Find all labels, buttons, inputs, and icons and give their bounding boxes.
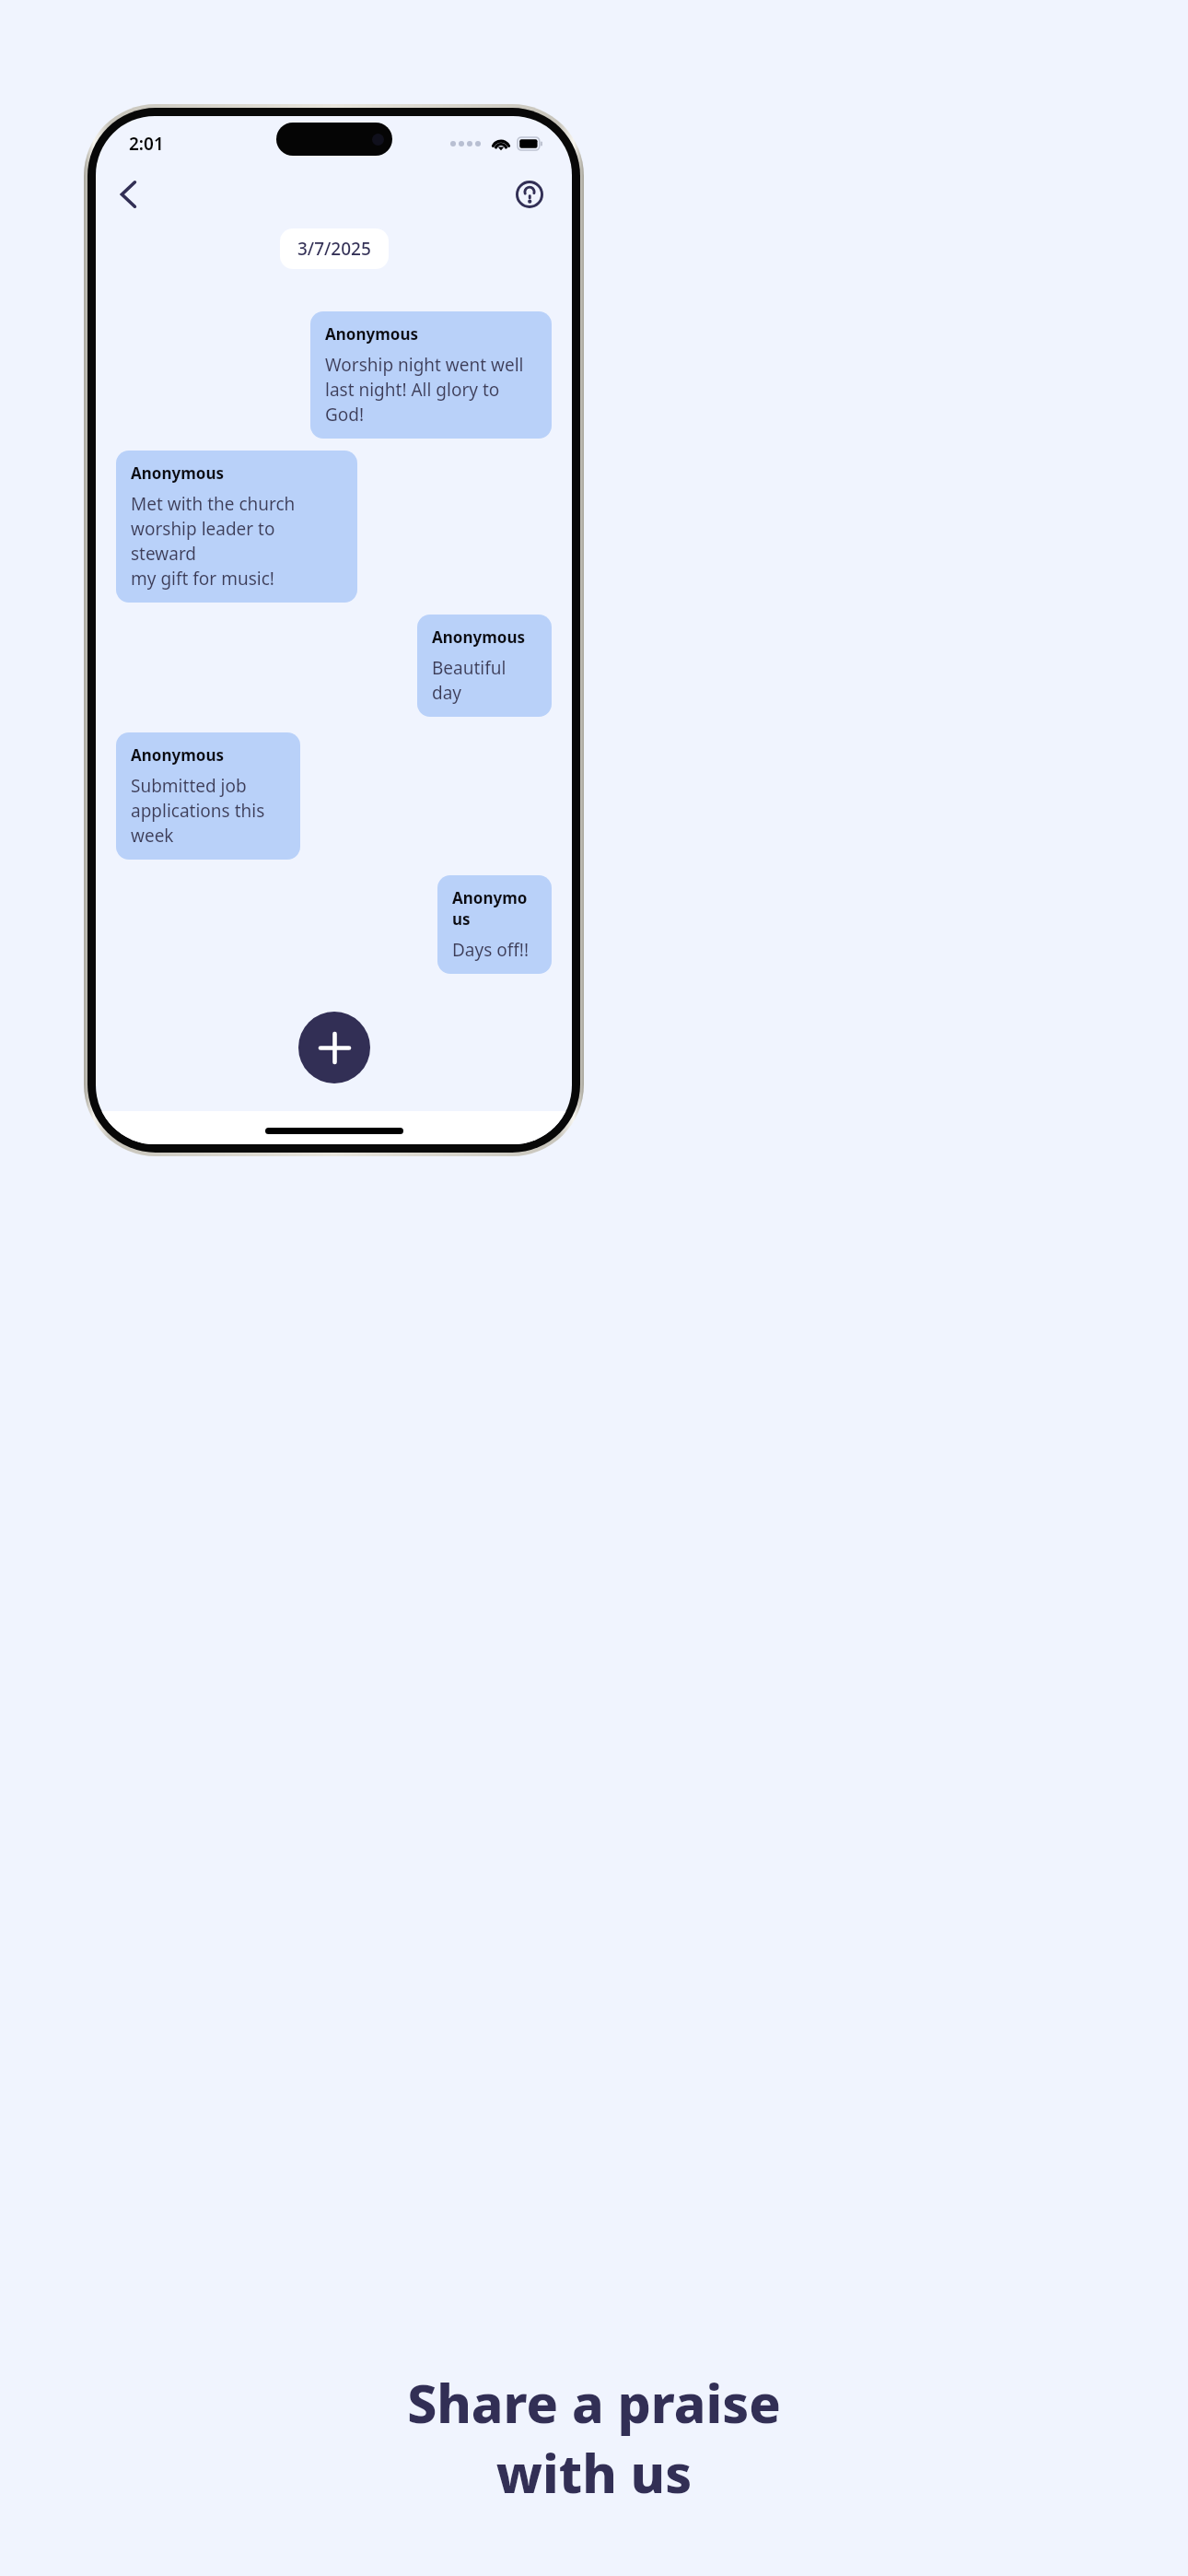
staticText: Days off!! (452, 938, 530, 962)
button[interactable]: Add praise (298, 1012, 370, 1083)
button[interactable]: Anonymous (417, 615, 552, 717)
button[interactable]: Help (509, 174, 550, 215)
button[interactable]: Back (107, 172, 151, 217)
button[interactable]: Anonymous (116, 732, 300, 860)
staticText: Met with the church worship leader to st… (131, 492, 343, 591)
button[interactable]: Anonymous (310, 311, 552, 439)
staticText: Share a praise with us (407, 2367, 781, 2508)
staticText: 3/7/2025 (297, 237, 371, 261)
button[interactable]: Anonymous (116, 451, 357, 603)
staticText: Anonymous (131, 744, 224, 766)
staticText: 2:01 (129, 132, 164, 156)
staticText: Anonymous (452, 887, 537, 930)
staticText: Worship night went well last night! All … (325, 353, 537, 427)
staticText: Anonymous (432, 626, 525, 648)
staticText: Anonymous (131, 463, 224, 484)
staticText: Submitted job applications this week (131, 774, 285, 848)
staticText: Beautiful day (432, 656, 537, 705)
button[interactable]: Anonymous (437, 875, 552, 974)
staticText: Anonymous (325, 323, 418, 345)
button[interactable]: 3/7/2025 (280, 228, 389, 269)
